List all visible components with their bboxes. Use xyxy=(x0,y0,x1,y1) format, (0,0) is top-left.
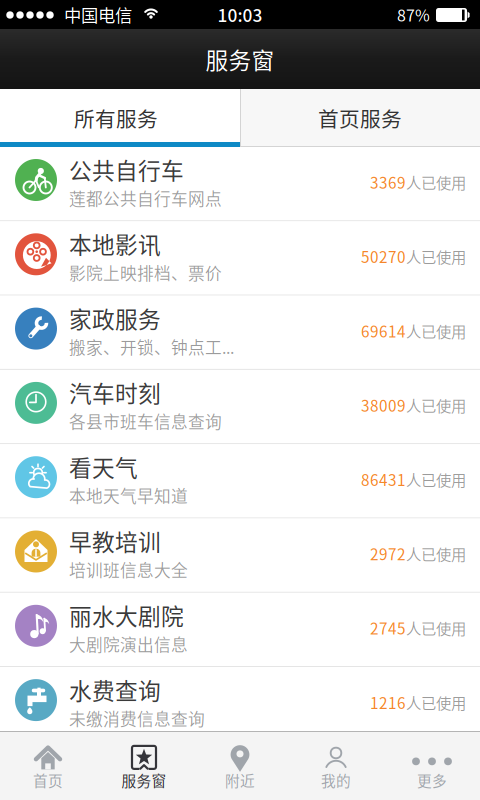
staticText: 服务窗 xyxy=(121,769,166,791)
button[interactable]: 早教培训 xyxy=(0,518,480,593)
staticText: 人已使用 xyxy=(406,245,466,267)
staticText: 早教培训 xyxy=(69,524,161,557)
staticText: 未缴消费信息查询 xyxy=(69,706,205,730)
button[interactable]: 看天气 xyxy=(0,444,480,518)
staticText: 首页 xyxy=(33,769,63,791)
staticText: 86431 xyxy=(361,468,406,490)
staticText: 水费查询 xyxy=(69,673,161,706)
staticText: 人已使用 xyxy=(406,320,466,342)
button[interactable]: 本地影讯 xyxy=(0,221,480,296)
button[interactable]: 附近 xyxy=(192,732,288,800)
button[interactable]: 我的 xyxy=(288,732,384,800)
staticText: 50270 xyxy=(361,245,406,267)
staticText: 人已使用 xyxy=(406,171,466,193)
staticText: 培训班信息大全 xyxy=(69,557,188,582)
staticText: 首页服务 xyxy=(318,103,402,133)
staticText: 丽水大剧院 xyxy=(69,599,184,632)
staticText: 更多 xyxy=(417,769,447,791)
staticText: 本地影讯 xyxy=(69,227,161,260)
button[interactable]: 首页 xyxy=(0,732,96,800)
staticText: 2745 xyxy=(370,617,406,639)
staticText: 我的 xyxy=(321,769,351,791)
button[interactable]: 首页服务 xyxy=(240,89,480,147)
staticText: 69614 xyxy=(361,320,406,342)
staticText: 大剧院演出信息 xyxy=(69,632,188,656)
staticText: 家政服务 xyxy=(69,302,161,334)
staticText: 人已使用 xyxy=(406,468,466,490)
button[interactable]: 公共自行车 xyxy=(0,147,480,221)
staticText: 附近 xyxy=(225,769,255,791)
staticText: 2972 xyxy=(370,542,406,565)
staticText: 3369 xyxy=(370,171,406,193)
staticText: 汽车时刻 xyxy=(69,376,161,409)
staticText: 中国电信 xyxy=(64,2,132,27)
staticText: 莲都公共自行车网点 xyxy=(69,186,222,210)
staticText: 人已使用 xyxy=(406,394,466,416)
staticText: 人已使用 xyxy=(406,617,466,639)
staticText: 10:03 xyxy=(217,2,262,27)
button[interactable]: 服务窗 xyxy=(96,732,192,800)
staticText: 搬家、开锁、钟点工... xyxy=(69,335,234,359)
button[interactable]: 更多 xyxy=(384,732,480,800)
staticText: 服务窗 xyxy=(205,43,274,75)
staticText: 本地天气早知道 xyxy=(69,483,188,507)
button[interactable]: 汽车时刻 xyxy=(0,370,480,444)
button[interactable]: 家政服务 xyxy=(0,296,480,370)
staticText: 看天气 xyxy=(69,450,138,483)
button[interactable]: 水费查询 xyxy=(0,667,480,741)
staticText: 人已使用 xyxy=(406,542,466,565)
staticText: 各县市班车信息查询 xyxy=(69,409,222,433)
staticText: 所有服务 xyxy=(74,103,158,133)
staticText: 人已使用 xyxy=(406,691,466,713)
staticText: 1216 xyxy=(370,691,406,713)
staticText: 公共自行车 xyxy=(69,153,184,186)
staticText: 38009 xyxy=(361,394,406,416)
button[interactable]: 所有服务 xyxy=(0,89,240,147)
staticText: 影院上映排档、票价 xyxy=(69,260,222,284)
button[interactable]: 丽水大剧院 xyxy=(0,593,480,667)
staticText: 87% xyxy=(397,3,430,26)
